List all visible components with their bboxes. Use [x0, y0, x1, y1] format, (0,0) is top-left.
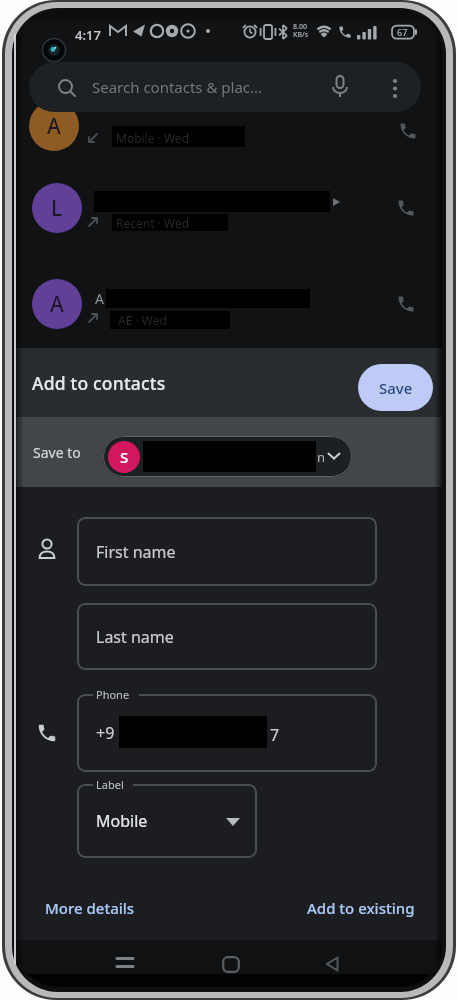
- staticText: Phone: [96, 687, 130, 702]
- staticText: n: [317, 448, 326, 466]
- button[interactable]: +9: [77, 694, 377, 772]
- staticText: 4:17: [75, 26, 101, 44]
- button[interactable]: More details: [45, 897, 165, 919]
- staticText: Search contacts & plac...: [92, 77, 263, 97]
- button[interactable]: [396, 294, 416, 314]
- button[interactable]: Save: [358, 364, 433, 411]
- staticText: AE · Wed: [118, 312, 167, 328]
- button[interactable]: [116, 953, 134, 971]
- staticText: Save to: [33, 443, 81, 462]
- staticText: Save: [379, 378, 413, 398]
- staticText: L: [51, 194, 63, 223]
- staticText: Add to contacts: [32, 371, 166, 395]
- button[interactable]: [330, 75, 350, 101]
- staticText: A: [47, 112, 61, 141]
- button[interactable]: [396, 198, 416, 218]
- staticText: A: [50, 290, 64, 319]
- staticText: 7: [270, 724, 280, 746]
- staticText: First name: [96, 541, 176, 563]
- button[interactable]: First name: [77, 517, 377, 586]
- button[interactable]: Search contacts & plac...: [29, 62, 421, 112]
- staticText: 67: [397, 26, 408, 38]
- staticText: Mobile · Wed: [116, 130, 190, 146]
- staticText: S: [120, 447, 129, 467]
- button[interactable]: [324, 956, 343, 972]
- staticText: Recent · Wed: [116, 215, 190, 231]
- staticText: +9: [96, 722, 115, 744]
- staticText: Mobile: [96, 810, 148, 832]
- button[interactable]: Mobile: [77, 784, 257, 858]
- button[interactable]: Add to existing: [295, 897, 415, 919]
- staticText: KB/s: [293, 30, 309, 40]
- button[interactable]: Last name: [77, 603, 377, 670]
- staticText: Add to existing: [307, 898, 415, 918]
- staticText: Label: [96, 777, 124, 792]
- button[interactable]: [389, 74, 401, 102]
- staticText: Last name: [96, 626, 174, 648]
- staticText: A: [95, 289, 104, 308]
- button[interactable]: [398, 121, 418, 141]
- button[interactable]: S: [103, 436, 352, 477]
- button[interactable]: [222, 956, 240, 973]
- staticText: More details: [45, 898, 135, 918]
- staticText: 8.00: [293, 22, 307, 32]
